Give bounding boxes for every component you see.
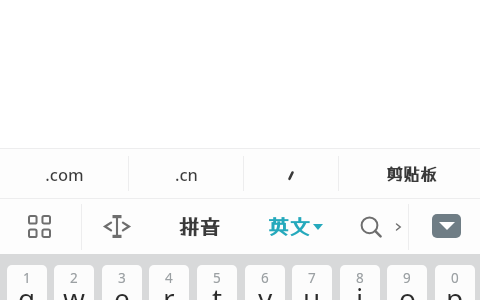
staticText: r [163, 279, 175, 300]
button[interactable]: 剪贴板 [341, 149, 480, 198]
staticText: 2 [70, 269, 78, 287]
staticText: 英文 [268, 214, 310, 239]
button[interactable]: 3 [102, 265, 142, 300]
button[interactable]: 英文 [268, 199, 332, 254]
staticText: e [114, 279, 130, 300]
button[interactable]: 0 [435, 265, 475, 300]
staticText: .cn [175, 163, 198, 185]
staticText: q [18, 279, 36, 300]
button[interactable]: 拼音 [169, 199, 229, 254]
staticText: 4 [165, 269, 173, 287]
button[interactable]: Search [350, 199, 390, 254]
staticText: 拼音 [178, 214, 220, 239]
button[interactable]: 1 [7, 265, 47, 300]
button[interactable]: .cn [129, 149, 243, 198]
staticText: 6 [261, 269, 269, 287]
button[interactable]: Move cursor [94, 199, 140, 254]
staticText: p [446, 279, 464, 300]
staticText: u [303, 279, 321, 300]
staticText: 3 [118, 269, 126, 287]
button[interactable]: .com [0, 149, 128, 198]
staticText: .com [45, 163, 84, 185]
button[interactable]: 7 [292, 265, 332, 300]
staticText: 剪贴板 [386, 164, 437, 184]
button[interactable]: 9 [387, 265, 427, 300]
button[interactable]: 2 [54, 265, 94, 300]
staticText: 8 [356, 269, 364, 287]
button[interactable]: Hide keyboard [432, 214, 461, 238]
staticText: y [258, 279, 273, 300]
button[interactable]: 6 [245, 265, 285, 300]
staticText: 5 [213, 269, 221, 287]
staticText: t [212, 279, 223, 300]
button[interactable]: Apostrophe [244, 149, 338, 198]
staticText: w [63, 279, 86, 300]
staticText: 9 [403, 269, 411, 287]
button[interactable]: 4 [149, 265, 189, 300]
button[interactable]: Keyboard layout [16, 199, 62, 254]
button[interactable]: 8 [340, 265, 380, 300]
staticText: i [356, 279, 364, 300]
staticText: o [399, 279, 416, 300]
staticText: 0 [451, 269, 459, 287]
staticText: 1 [23, 269, 31, 287]
staticText: 7 [308, 269, 316, 287]
button[interactable]: 5 [197, 265, 237, 300]
